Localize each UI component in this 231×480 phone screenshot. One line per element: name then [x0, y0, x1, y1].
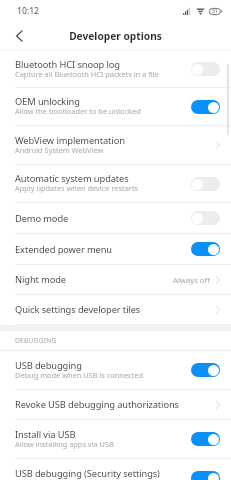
button[interactable]: Switch, on: [191, 100, 220, 114]
staticText: Revoke USB debugging authorizations: [15, 398, 179, 411]
button[interactable]: WebView implementation: [0, 126, 231, 164]
button[interactable]: Revoke USB debugging authorizations: [0, 390, 231, 419]
staticText: USB debugging (Security settings): [15, 467, 160, 480]
staticText: Allow the bootloader to be unlocked: [15, 106, 141, 116]
staticText: 10:12: [17, 5, 40, 17]
button[interactable]: Quick settings developer tiles: [0, 295, 231, 324]
button[interactable]: USB debugging (Security settings): [0, 459, 231, 480]
staticText: Bluetooth HCI snoop log: [15, 58, 120, 71]
button[interactable]: Switch, on: [191, 471, 220, 480]
staticText: Demo mode: [15, 212, 69, 225]
staticText: 51: [212, 8, 218, 15]
staticText: Install via USB: [15, 428, 76, 441]
button[interactable]: Switch, on: [191, 363, 220, 377]
staticText: Quick settings developer tiles: [15, 303, 141, 316]
staticText: Capture all Bluetooth HCI packets in a f…: [15, 69, 159, 79]
button[interactable]: Night mode: [0, 265, 231, 294]
button[interactable]: Bluetooth HCI snoop log: [0, 51, 231, 87]
button[interactable]: Switch, off: [191, 62, 220, 76]
button[interactable]: Back: [5, 22, 33, 50]
staticText: Debug mode when USB is connected: [15, 370, 144, 380]
staticText: Night mode: [15, 273, 66, 286]
button[interactable]: Automatic system updates: [0, 165, 231, 202]
button[interactable]: Install via USB: [0, 420, 231, 458]
staticText: OEM unlocking: [15, 95, 80, 108]
button[interactable]: Switch, off: [191, 177, 220, 191]
button[interactable]: Demo mode: [0, 203, 231, 233]
staticText: Automatic system updates: [15, 172, 129, 185]
button[interactable]: OEM unlocking: [0, 88, 231, 125]
button[interactable]: USB debugging: [0, 351, 231, 389]
button[interactable]: Switch, off: [191, 211, 220, 225]
staticText: WebView implementation: [15, 134, 125, 147]
staticText: Allow installing apps via USB: [15, 439, 114, 449]
button[interactable]: Extended power menu: [0, 234, 231, 264]
staticText: Always off: [173, 275, 210, 285]
button[interactable]: Switch, on: [191, 432, 220, 446]
staticText: USB debugging: [15, 359, 82, 372]
staticText: Android System WebView: [15, 145, 104, 155]
staticText: Allow granting permissions and simulatin…: [15, 478, 164, 480]
staticText: Developer options: [69, 29, 162, 43]
staticText: DEBUGGING: [15, 336, 57, 345]
button[interactable]: Switch, on: [191, 242, 220, 256]
staticText: Apply updates when device restarts: [15, 183, 139, 193]
staticText: Extended power menu: [15, 243, 113, 256]
